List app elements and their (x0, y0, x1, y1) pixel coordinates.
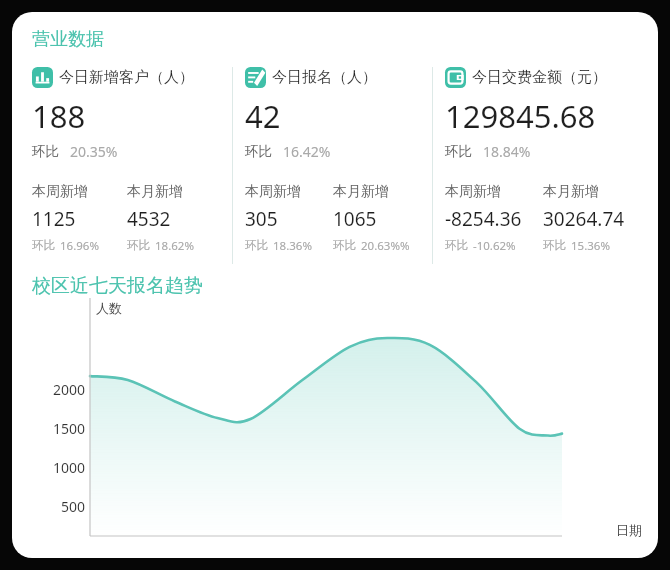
other: 今日报名 (245, 67, 266, 88)
staticText: 环比 (245, 143, 272, 160)
staticText: 环比 (333, 238, 356, 252)
button[interactable]: 今日报名 (245, 67, 422, 254)
staticText: 日期 (616, 522, 642, 538)
staticText: -10.62% (473, 238, 516, 254)
staticText: 4532 (127, 206, 171, 232)
staticText: 16.96% (60, 238, 99, 254)
staticText: 本周新增 (32, 183, 88, 201)
staticText: 20.63%% (361, 238, 410, 254)
button[interactable]: 本周新增 (32, 183, 127, 254)
staticText: 20.35% (70, 142, 118, 161)
staticText: 今日报名（人） (272, 68, 377, 87)
staticText: 本月新增 (127, 183, 183, 201)
staticText: 16.42% (283, 142, 331, 161)
button[interactable]: 本周新增 (245, 183, 333, 254)
staticText: 500 (61, 497, 86, 516)
button[interactable]: 本周新增 (445, 183, 543, 254)
staticText: 18.36% (273, 238, 312, 254)
staticText: 129845.68 (445, 95, 596, 137)
staticText: 环比 (543, 238, 566, 252)
staticText: 1065 (333, 206, 377, 232)
staticText: 营业数据 (32, 28, 104, 51)
staticText: 环比 (445, 143, 472, 160)
staticText: 校区近七天报名趋势 (32, 274, 203, 298)
button[interactable]: 本月新增 (127, 183, 222, 254)
staticText: 环比 (445, 238, 468, 252)
staticText: 本月新增 (543, 183, 599, 201)
staticText: 2000 (53, 380, 86, 399)
staticText: 环比 (32, 143, 59, 160)
staticText: 本周新增 (445, 183, 501, 201)
staticText: 人数 (96, 300, 122, 316)
staticText: 本月新增 (333, 183, 389, 201)
button[interactable]: 今日新增客户 (32, 67, 222, 254)
staticText: 环比 (245, 238, 268, 252)
staticText: 今日交费金额（元） (472, 68, 607, 87)
other: 今日新增客户 (32, 67, 53, 88)
staticText: 30264.74 (543, 206, 625, 232)
staticText: 188 (32, 95, 86, 137)
button[interactable]: 本月新增 (543, 183, 642, 254)
staticText: 18.84% (483, 142, 531, 161)
staticText: 42 (245, 95, 281, 137)
staticText: 本周新增 (245, 183, 301, 201)
staticText: 305 (245, 206, 278, 232)
button[interactable]: 本月新增 (333, 183, 422, 254)
staticText: 环比 (32, 238, 55, 252)
staticText: 1000 (53, 458, 86, 477)
other: 今日交费金额 (445, 67, 466, 88)
staticText: 15.36% (571, 238, 610, 254)
staticText: 1500 (53, 419, 86, 438)
staticText: 环比 (127, 238, 150, 252)
staticText: -8254.36 (445, 206, 522, 232)
staticText: 1125 (32, 206, 76, 232)
staticText: 今日新增客户（人） (59, 68, 194, 87)
staticText: 18.62% (155, 238, 194, 254)
button[interactable]: 今日交费金额 (445, 67, 642, 254)
